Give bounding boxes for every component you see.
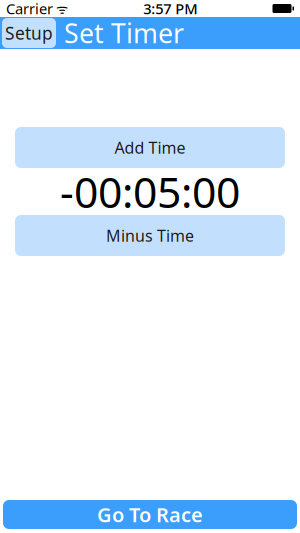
staticText: ᯤ [53,0,68,17]
button[interactable]: Add Time [15,127,285,168]
staticText: -00:05:00 [60,163,240,220]
button[interactable]: Setup [2,18,56,48]
staticText: Set Timer [64,15,184,51]
staticText: 3:57 PM [143,0,197,18]
staticText: Add Time [114,137,185,158]
button[interactable]: Go To Race [3,500,297,529]
staticText: Minus Time [106,225,194,246]
button[interactable]: Minus Time [15,215,285,256]
staticText: Setup [5,21,53,44]
staticText: Go To Race [97,501,203,528]
staticText: Carrier [6,0,53,18]
